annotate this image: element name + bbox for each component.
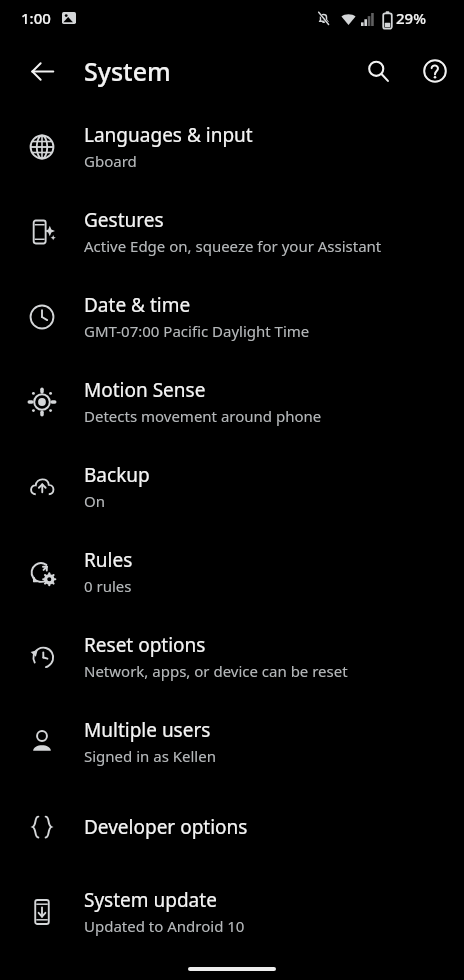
staticText: Updated to Android 10 <box>84 916 245 936</box>
other: Rules <box>29 559 55 585</box>
staticText: GMT-07:00 Pacific Daylight Time <box>84 321 310 341</box>
button[interactable]: Motion Sense <box>0 359 464 444</box>
other: Motion Sense <box>29 389 55 415</box>
staticText: Reset options <box>84 632 206 658</box>
staticText: Date & time <box>84 292 191 318</box>
button[interactable]: Search <box>354 47 402 95</box>
staticText: Gboard <box>84 151 137 171</box>
button[interactable]: System update <box>0 869 464 954</box>
staticText: System <box>84 54 171 88</box>
button[interactable]: Date and time <box>0 274 464 359</box>
staticText: Signed in as Kellen <box>84 746 216 766</box>
staticText: Motion Sense <box>84 377 206 403</box>
staticText: Active Edge on, squeeze for your Assista… <box>84 236 382 256</box>
other: Gestures <box>29 219 55 245</box>
button[interactable]: Help <box>411 47 459 95</box>
staticText: On <box>84 491 105 511</box>
staticText: 1:00 <box>21 8 51 28</box>
staticText: Rules <box>84 547 133 573</box>
button[interactable]: Gestures <box>0 189 464 274</box>
button[interactable]: Developer options <box>0 784 464 869</box>
staticText: Gestures <box>84 207 164 233</box>
staticText: 0 rules <box>84 576 132 596</box>
staticText: Multiple users <box>84 717 211 743</box>
staticText: Detects movement around phone <box>84 406 322 426</box>
other: Reset <box>29 644 55 670</box>
staticText: System update <box>84 887 217 913</box>
staticText: Network, apps, or device can be reset <box>84 661 348 681</box>
staticText: 29% <box>396 8 426 28</box>
other: Languages and input <box>29 134 55 160</box>
button[interactable]: Backup <box>0 444 464 529</box>
staticText: Backup <box>84 462 150 488</box>
button[interactable]: Users <box>0 699 464 784</box>
staticText: Languages & input <box>84 122 253 148</box>
button[interactable]: Languages and input <box>0 104 464 189</box>
button[interactable]: Rules <box>0 529 464 614</box>
other: Date and time <box>29 304 55 330</box>
other: Users <box>29 729 55 755</box>
other: Developer options <box>29 814 55 840</box>
other: System update <box>29 899 55 925</box>
button[interactable]: Reset <box>0 614 464 699</box>
button[interactable]: Back <box>18 47 66 95</box>
other: Backup <box>29 474 55 500</box>
staticText: Developer options <box>84 814 248 840</box>
